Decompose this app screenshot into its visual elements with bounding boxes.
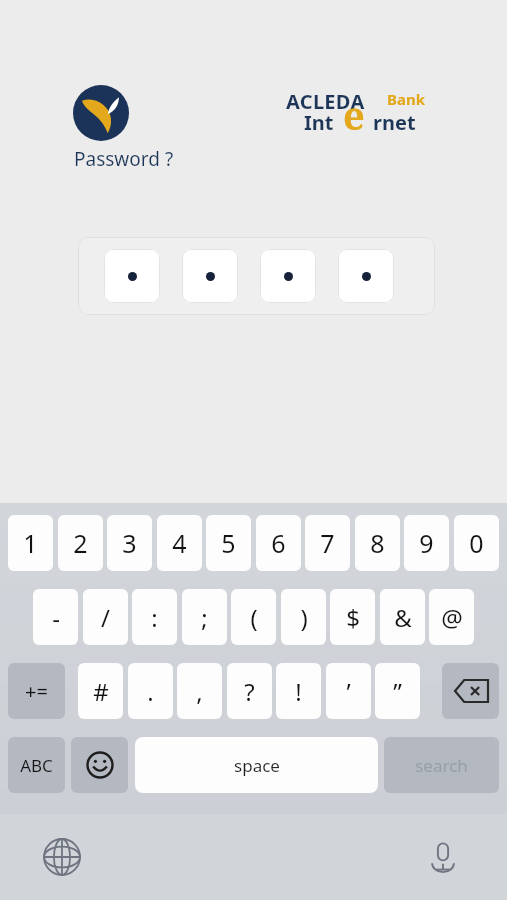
staticText: ? [244, 675, 255, 708]
button[interactable]: 6 [256, 515, 301, 571]
staticText: space [234, 754, 280, 777]
button[interactable]: 4 [157, 515, 202, 571]
button[interactable]: search [384, 737, 499, 793]
staticText: , [196, 675, 203, 708]
button[interactable] [182, 249, 238, 303]
staticText: ” [393, 675, 402, 708]
button[interactable]: , [177, 663, 222, 719]
button[interactable]: 9 [404, 515, 449, 571]
button[interactable]: & [380, 589, 425, 645]
button[interactable]: Emoji [71, 737, 128, 793]
staticText: ! [295, 675, 302, 708]
staticText: # [93, 675, 109, 708]
staticText: ’ [346, 675, 351, 708]
staticText: Bank [387, 89, 426, 109]
staticText: 8 [370, 526, 385, 560]
staticText: e [343, 89, 365, 135]
button[interactable]: 2 [58, 515, 103, 571]
button[interactable]: 0 [454, 515, 499, 571]
button[interactable]: Backspace [442, 663, 499, 719]
button[interactable]: ” [375, 663, 420, 719]
staticText: 4 [172, 526, 187, 560]
button[interactable]: / [83, 589, 128, 645]
button[interactable]: ABC [8, 737, 65, 793]
button[interactable]: 7 [305, 515, 350, 571]
button[interactable]: ? [227, 663, 272, 719]
staticText: ACLEDA [286, 88, 365, 115]
staticText: ( [250, 601, 258, 634]
button[interactable] [260, 249, 316, 303]
staticText: $ [346, 601, 360, 634]
staticText: 7 [320, 526, 335, 560]
staticText: search [415, 754, 468, 777]
button[interactable]: ! [276, 663, 321, 719]
button[interactable] [104, 249, 160, 303]
button[interactable]: 1 [8, 515, 53, 571]
button[interactable]: ; [182, 589, 227, 645]
staticText: rnet [373, 109, 416, 136]
button[interactable] [338, 249, 394, 303]
staticText: ; [201, 601, 208, 634]
button[interactable]: : [132, 589, 177, 645]
button[interactable]: space [135, 737, 378, 793]
button[interactable]: 5 [206, 515, 251, 571]
staticText: 5 [221, 526, 236, 560]
staticText: 6 [271, 526, 286, 560]
button[interactable]: 3 [107, 515, 152, 571]
staticText: @ [441, 601, 463, 634]
button[interactable]: 8 [355, 515, 400, 571]
staticText: ABC [20, 754, 53, 777]
button[interactable]: - [33, 589, 78, 645]
staticText: : [151, 601, 158, 634]
staticText: & [394, 601, 412, 634]
staticText: 1 [23, 526, 38, 560]
button[interactable]: . [128, 663, 173, 719]
button[interactable]: ) [281, 589, 326, 645]
staticText: ) [300, 601, 308, 634]
staticText: 2 [73, 526, 88, 560]
button[interactable]: Change language [40, 835, 84, 879]
button[interactable]: $ [330, 589, 375, 645]
button[interactable]: ’ [326, 663, 371, 719]
staticText: Int [304, 109, 334, 136]
button[interactable]: # [78, 663, 123, 719]
staticText: 3 [122, 526, 137, 560]
staticText: - [52, 601, 60, 634]
staticText: 9 [419, 526, 434, 560]
button[interactable]: ( [231, 589, 276, 645]
staticText: 0 [469, 526, 484, 560]
staticText: Password ? [74, 146, 174, 172]
button[interactable]: Voice input [421, 835, 465, 879]
staticText: += [25, 678, 48, 705]
staticText: . [147, 675, 154, 708]
staticText: / [101, 601, 110, 634]
button[interactable]: @ [429, 589, 474, 645]
button[interactable]: += [8, 663, 65, 719]
